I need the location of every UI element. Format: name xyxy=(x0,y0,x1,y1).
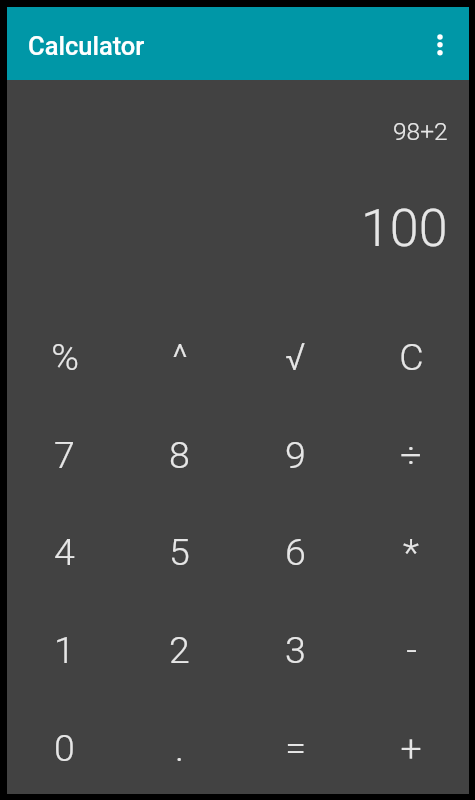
button[interactable]: . xyxy=(122,699,237,797)
staticText: 2 xyxy=(169,628,190,672)
button[interactable]: 5 xyxy=(122,503,237,601)
staticText: 5 xyxy=(169,530,190,574)
button[interactable]: - xyxy=(353,601,469,699)
staticText: 7 xyxy=(54,433,75,477)
staticText: 6 xyxy=(285,530,306,574)
staticText: 1 xyxy=(54,628,75,672)
button[interactable]: 4 xyxy=(7,503,122,601)
staticText: + xyxy=(400,726,422,770)
staticText: 100 xyxy=(361,198,448,259)
button[interactable]: 7 xyxy=(7,406,122,504)
staticText: - xyxy=(406,628,417,672)
staticText: = xyxy=(285,726,306,770)
staticText: 3 xyxy=(285,628,306,672)
staticText: 98+2 xyxy=(393,117,448,146)
staticText: 9 xyxy=(285,433,306,477)
button[interactable]: * xyxy=(353,503,469,601)
button[interactable]: √ xyxy=(237,308,353,406)
button[interactable]: + xyxy=(353,699,469,797)
button[interactable]: = xyxy=(237,699,353,797)
staticText: * xyxy=(403,530,419,574)
button[interactable]: 2 xyxy=(122,601,237,699)
button[interactable]: % xyxy=(7,308,122,406)
button[interactable]: 9 xyxy=(237,406,353,504)
staticText: 8 xyxy=(169,433,190,477)
button[interactable]: 8 xyxy=(122,406,237,504)
staticText: √ xyxy=(285,335,306,379)
staticText: ^ xyxy=(172,335,188,379)
button[interactable]: 3 xyxy=(237,601,353,699)
button[interactable]: More options xyxy=(418,22,462,66)
staticText: 0 xyxy=(54,726,75,770)
button[interactable]: 0 xyxy=(7,699,122,797)
staticText: Calculator xyxy=(28,31,145,61)
button[interactable]: C xyxy=(353,308,469,406)
staticText: . xyxy=(175,726,184,770)
button[interactable]: ^ xyxy=(122,308,237,406)
button[interactable]: 1 xyxy=(7,601,122,699)
button[interactable]: 6 xyxy=(237,503,353,601)
staticText: ÷ xyxy=(400,433,422,477)
staticText: 4 xyxy=(54,530,75,574)
staticText: % xyxy=(51,335,79,379)
staticText: C xyxy=(399,335,424,379)
button[interactable]: ÷ xyxy=(353,406,469,504)
